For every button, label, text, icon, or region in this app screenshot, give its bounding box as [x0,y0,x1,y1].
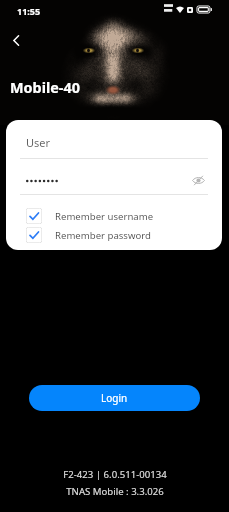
button[interactable]: Remember password [6,226,222,244]
staticText: Login [101,391,128,405]
staticText: 11:55 [17,5,41,17]
staticText: TNAS Mobile : 3.3.026 [66,485,164,498]
staticText: Remember password [55,229,151,242]
button[interactable]: Back [2,26,30,54]
staticText: Remember username [55,210,154,223]
button[interactable]: Show password [6,159,222,189]
staticText: Mobile-40 [10,78,80,98]
button[interactable]: Show password [191,173,205,187]
button[interactable]: User [6,122,222,158]
staticText: User [26,135,51,150]
button[interactable]: Login [29,385,200,411]
staticText: F2-423 | 6.0.511-00134 [63,468,167,481]
button[interactable]: Remember username [6,207,222,225]
